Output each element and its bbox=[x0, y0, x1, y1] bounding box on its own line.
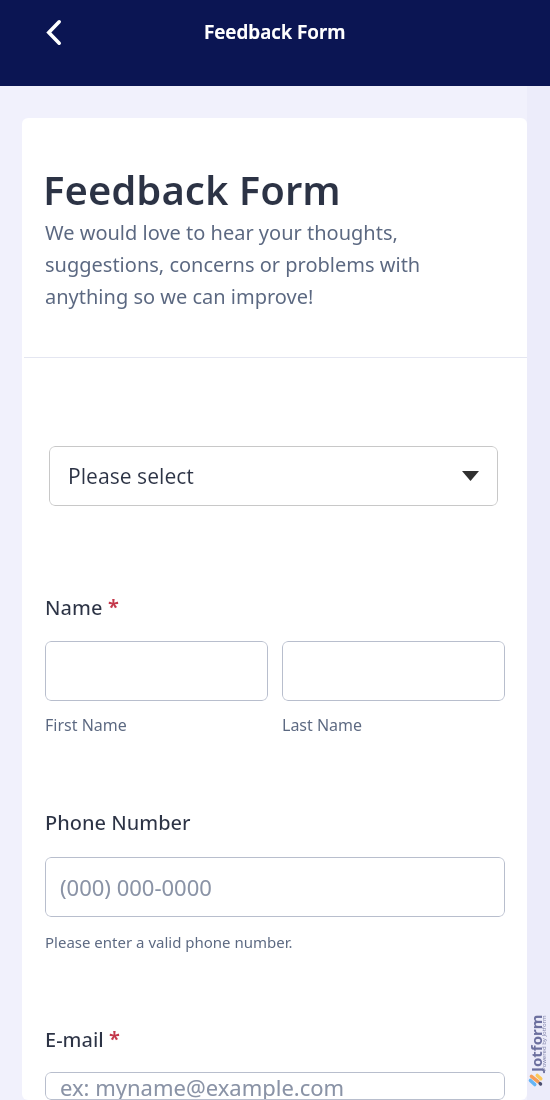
staticText: Feedback Form bbox=[204, 19, 346, 45]
staticText: First Name bbox=[45, 714, 127, 736]
staticText: Last Name bbox=[282, 714, 363, 736]
staticText: * bbox=[108, 593, 119, 620]
staticText: E-mail bbox=[45, 1026, 104, 1053]
staticText: Powered by Jotform bbox=[540, 1015, 548, 1071]
button[interactable]: Please select bbox=[49, 446, 498, 506]
button[interactable]: Back bbox=[33, 12, 74, 53]
staticText: Name bbox=[45, 594, 103, 621]
button[interactable]: ex: myname@example.com bbox=[45, 1072, 505, 1100]
button[interactable] bbox=[45, 641, 268, 701]
staticText: (000) 000-0000 bbox=[60, 872, 212, 902]
staticText: Please enter a valid phone number. bbox=[45, 932, 293, 952]
staticText: We would love to hear your thoughts, sug… bbox=[45, 219, 504, 310]
staticText: Please select bbox=[68, 462, 194, 491]
staticText: * bbox=[109, 1025, 120, 1052]
button[interactable]: Powered by Jotform bbox=[527, 86, 550, 1100]
staticText: Phone Number bbox=[45, 809, 191, 836]
staticText: ex: myname@example.com bbox=[60, 1072, 345, 1100]
button[interactable] bbox=[282, 641, 505, 701]
staticText: Feedback Form bbox=[43, 162, 341, 216]
button[interactable]: (000) 000-0000 bbox=[45, 857, 505, 917]
staticText: Jotform bbox=[526, 1014, 546, 1072]
